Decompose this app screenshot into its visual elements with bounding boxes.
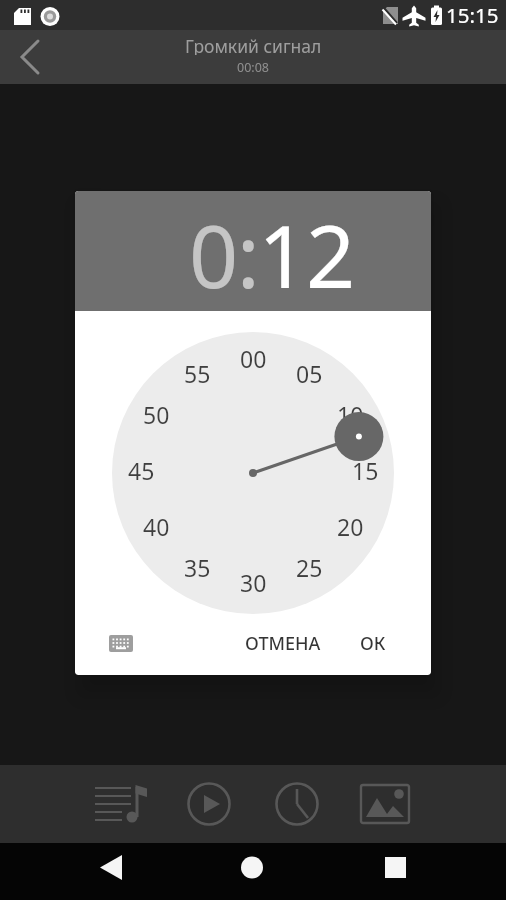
staticText: 50 <box>143 399 170 427</box>
staticText: 00:08 <box>237 59 269 76</box>
button[interactable] <box>168 843 337 900</box>
staticText: 40 <box>143 511 170 539</box>
staticText: 45 <box>128 455 155 483</box>
staticText: 15:15 <box>446 1 499 29</box>
staticText: 15 <box>352 455 379 483</box>
staticText: ОТМЕНА <box>245 631 321 656</box>
button[interactable] <box>77 765 165 843</box>
staticText: 05 <box>296 358 323 386</box>
button[interactable] <box>101 625 141 661</box>
button[interactable] <box>165 765 253 843</box>
button[interactable]: 10 <box>330 399 370 427</box>
staticText: 0:12 <box>189 196 354 313</box>
button[interactable]: 20 <box>330 511 370 539</box>
button[interactable] <box>0 30 54 84</box>
staticText: 35 <box>184 552 211 580</box>
staticText: 00 <box>240 343 267 371</box>
staticText: 55 <box>184 358 211 386</box>
button[interactable] <box>341 765 429 843</box>
staticText: 30 <box>240 567 267 595</box>
staticText: Громкий сигнал <box>185 34 322 55</box>
button[interactable]: 30 <box>233 567 273 595</box>
button[interactable]: 40 <box>136 511 176 539</box>
staticText: 25 <box>296 552 323 580</box>
button[interactable]: 25 <box>289 552 329 580</box>
staticText: 10 <box>337 399 364 427</box>
button[interactable]: 50 <box>136 399 176 427</box>
button[interactable]: 45 <box>121 455 161 483</box>
staticText: ОК <box>360 631 386 656</box>
button[interactable] <box>0 843 168 900</box>
button[interactable]: 05 <box>289 358 329 386</box>
staticText: 20 <box>337 511 364 539</box>
button[interactable]: 35 <box>177 552 217 580</box>
button[interactable]: 15 <box>345 455 385 483</box>
button[interactable]: ОК <box>360 623 386 663</box>
button[interactable]: ОТМЕНА <box>245 623 321 663</box>
button[interactable] <box>337 843 506 900</box>
button[interactable]: 00 <box>233 343 273 371</box>
button[interactable]: 55 <box>177 358 217 386</box>
button[interactable] <box>253 765 341 843</box>
